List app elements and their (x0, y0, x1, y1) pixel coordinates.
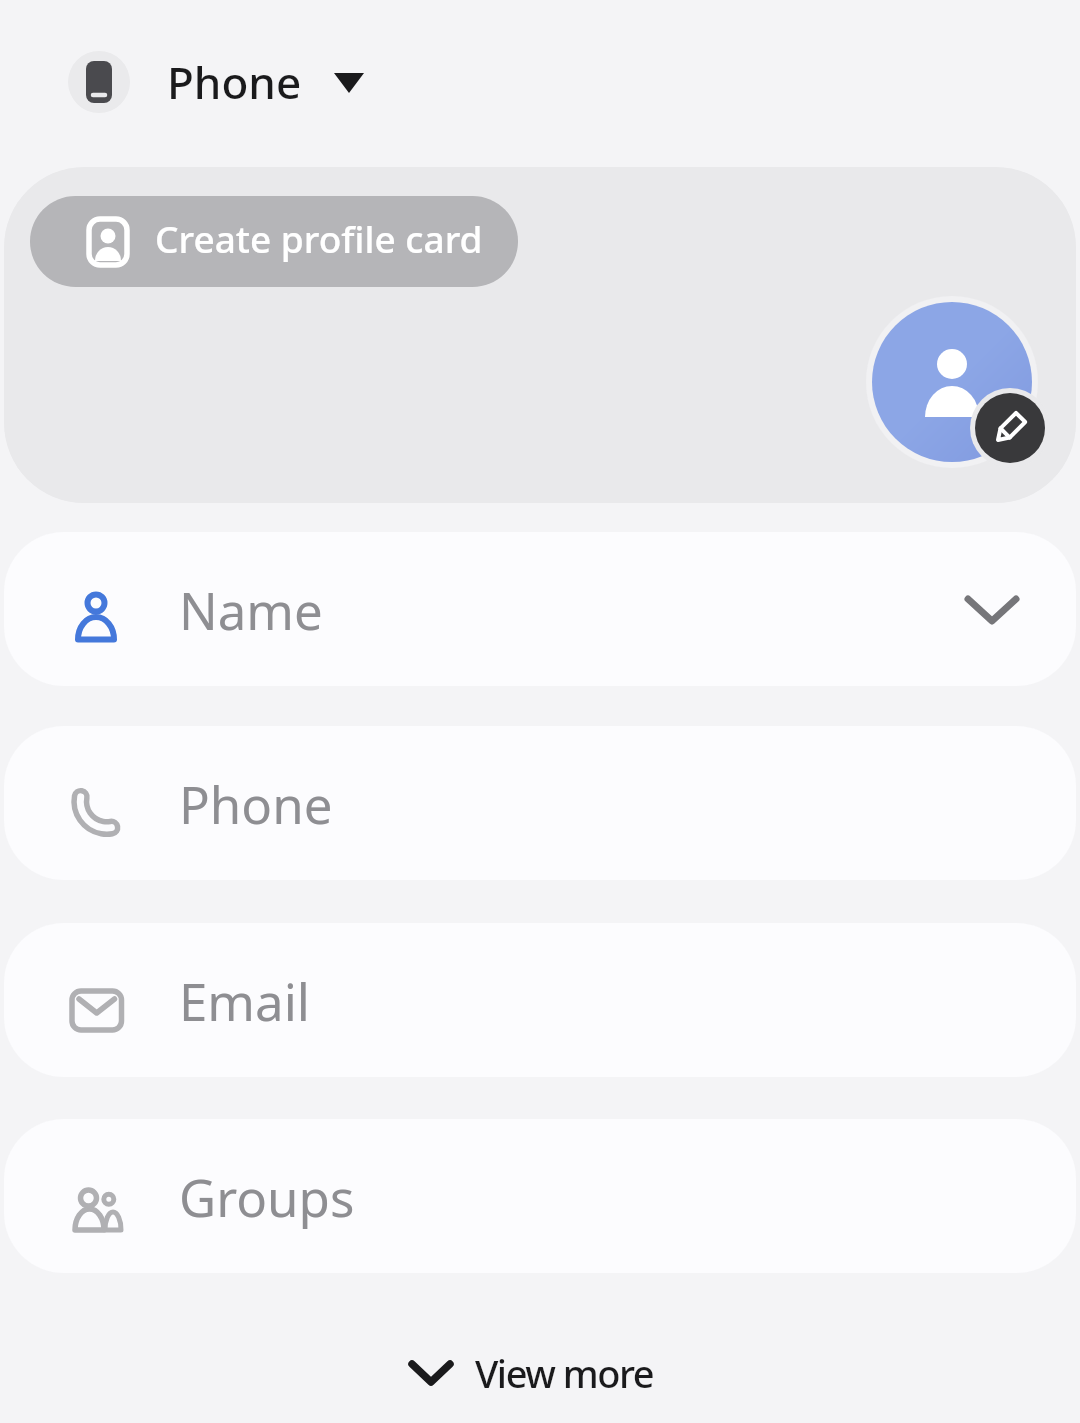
staticText: Phone (179, 769, 333, 838)
button[interactable]: Email (4, 923, 1076, 1077)
button[interactable]: Phone (68, 50, 364, 114)
button[interactable]: Create profile card (30, 196, 518, 287)
staticText: Name (179, 575, 323, 644)
staticText: View more (475, 1347, 654, 1399)
button[interactable]: Groups (4, 1119, 1076, 1273)
button[interactable]: Name (4, 532, 1076, 686)
button[interactable]: Phone (4, 726, 1076, 880)
button[interactable]: View more (411, 1336, 654, 1410)
staticText: Email (179, 966, 310, 1035)
staticText: Create profile card (155, 213, 483, 263)
staticText: Phone (167, 52, 302, 112)
button[interactable] (975, 393, 1045, 463)
button[interactable] (872, 302, 1032, 462)
staticText: Groups (179, 1162, 355, 1231)
